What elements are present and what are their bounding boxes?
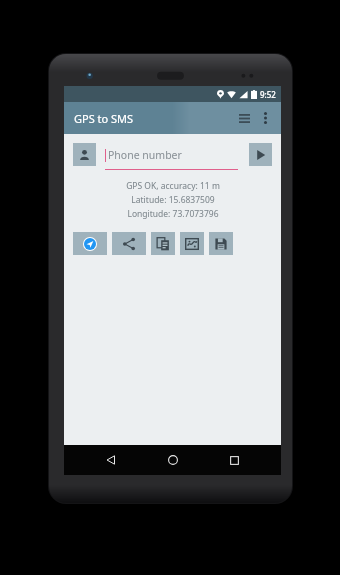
button[interactable]: Send [249,143,272,166]
button[interactable]: Copy [151,232,175,255]
staticText: GPS to SMS [74,111,134,126]
button[interactable]: Share [112,232,146,255]
button[interactable]: Navigate [73,232,107,255]
button[interactable]: Menu [233,107,255,129]
staticText: GPS OK, accuracy: 11 m [126,180,220,192]
button[interactable]: Pick contact [73,143,96,166]
button[interactable]: Home [158,445,188,475]
button[interactable]: Recents [219,445,249,475]
staticText: Phone number [108,148,182,162]
button[interactable]: More options [255,108,275,128]
staticText: Latitude: 15.6837509 [131,194,215,206]
button[interactable]: Map [180,232,204,255]
staticText: Longitude: 73.7073796 [127,208,219,220]
button[interactable]: Save [209,232,233,255]
button[interactable]: Back [96,445,126,475]
staticText: 9:52 [260,89,276,100]
